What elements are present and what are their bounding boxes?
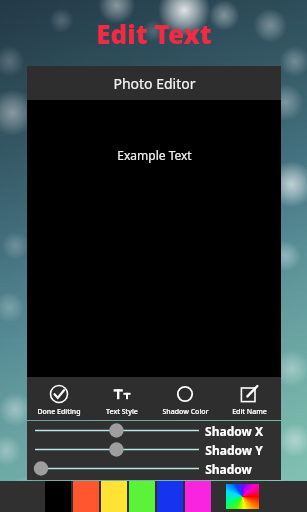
staticText: Text Style (106, 407, 138, 417)
button[interactable]: Shadow Y (27, 440, 281, 459)
staticText: Shadow X (205, 423, 263, 439)
button[interactable]: Color picker (226, 484, 259, 509)
staticText: Edit Name (232, 407, 267, 417)
staticText: Photo Editor (113, 74, 196, 93)
other: Edit Name (239, 384, 259, 404)
button[interactable]: Shadow X (27, 421, 281, 440)
staticText: Done Editing (37, 407, 81, 417)
staticText: Shadow (205, 461, 252, 477)
other: Shadow Color (175, 384, 195, 404)
button[interactable]: Shadow Color (153, 381, 217, 417)
button[interactable]: Shadow (27, 459, 281, 478)
staticText: Edit Text (96, 16, 212, 51)
button[interactable]: Done Editing (27, 381, 90, 417)
other: Text Style (112, 384, 132, 404)
button[interactable]: Text Style (90, 381, 153, 417)
other: Done Editing (49, 384, 69, 404)
staticText: Shadow Color (162, 407, 209, 417)
staticText: Shadow Y (205, 442, 263, 458)
button[interactable]: Edit Name (217, 381, 281, 417)
staticText: Example Text (117, 147, 192, 163)
